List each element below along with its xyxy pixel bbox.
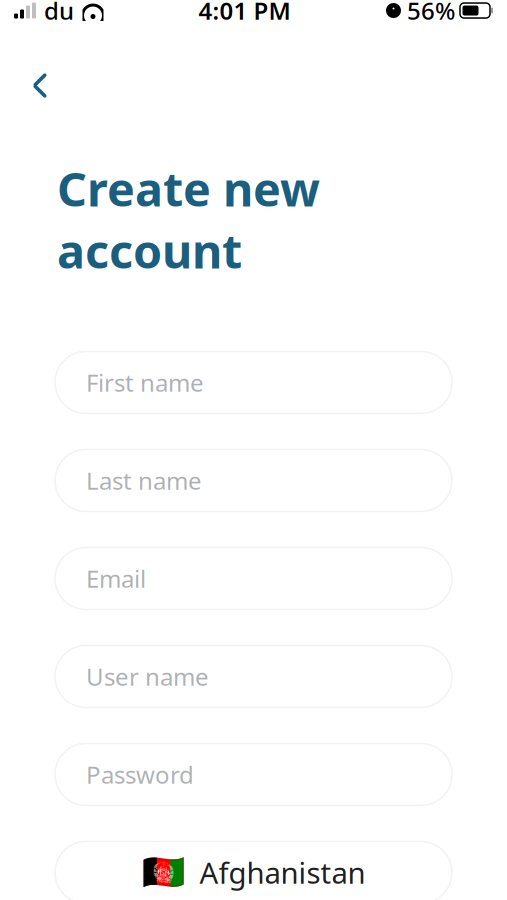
button[interactable]: Back (13, 58, 67, 112)
staticText: Password (86, 758, 194, 790)
button[interactable]: Last name (55, 449, 452, 511)
staticText: 4:01 PM (198, 0, 290, 26)
staticText: Create new account (57, 157, 320, 281)
staticText: Afghanistan (199, 853, 365, 892)
button[interactable]: 🇦🇫 (55, 841, 452, 900)
staticText: Last name (86, 464, 202, 496)
button[interactable]: User name (55, 645, 452, 707)
button[interactable]: Password (55, 743, 452, 805)
button[interactable]: First name (55, 351, 452, 413)
staticText: 🇦🇫 (141, 853, 184, 892)
staticText: User name (86, 660, 209, 692)
staticText: du (44, 0, 74, 26)
button[interactable]: Email (55, 547, 452, 609)
staticText: 56% (407, 0, 455, 26)
staticText: First name (86, 366, 204, 398)
staticText: Email (86, 562, 146, 594)
